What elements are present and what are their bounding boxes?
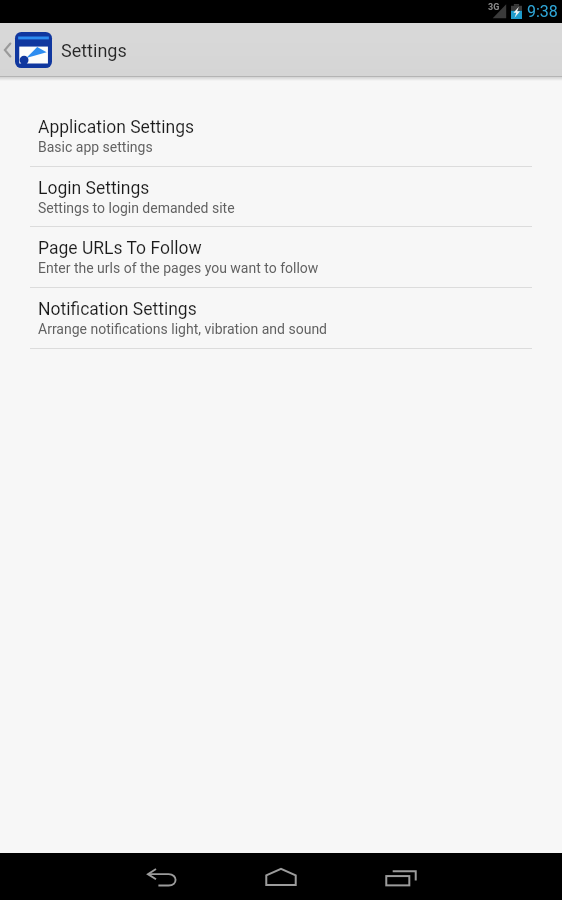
button[interactable]: Back	[122, 853, 202, 900]
button[interactable]: Home	[241, 853, 321, 900]
staticText: Arrange notifications light, vibration a…	[38, 321, 328, 337]
staticText: Settings to login demanded site	[38, 200, 235, 216]
staticText: 3G	[488, 2, 500, 13]
staticText: Basic app settings	[38, 139, 153, 155]
button[interactable]: Application Settings	[0, 106, 562, 167]
button[interactable]: Login Settings	[0, 167, 562, 227]
button[interactable]: Navigate up	[0, 23, 562, 76]
other: Navigate up	[2, 38, 13, 62]
staticText: Notification Settings	[38, 299, 197, 320]
staticText: Application Settings	[38, 117, 195, 138]
staticText: Page URLs To Follow	[38, 238, 202, 259]
staticText: Login Settings	[38, 178, 150, 199]
button[interactable]: Notification Settings	[0, 288, 562, 349]
staticText: 9:38	[527, 2, 558, 21]
staticText: Settings	[61, 40, 127, 61]
button[interactable]: Recent apps	[361, 853, 441, 900]
staticText: Enter the urls of the pages you want to …	[38, 260, 319, 276]
button[interactable]: Page URLs To Follow	[0, 227, 562, 288]
